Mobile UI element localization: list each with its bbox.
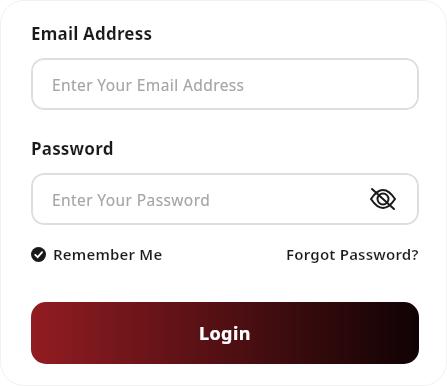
staticText: Enter Your Email Address <box>52 74 245 95</box>
button[interactable]: Login <box>31 302 419 364</box>
button[interactable] <box>369 185 397 213</box>
button[interactable]: Forgot Password? <box>286 244 419 264</box>
staticText: Login <box>199 321 251 346</box>
staticText: Enter Your Password <box>52 189 211 210</box>
button[interactable]: Enter Your Email Address <box>31 58 419 110</box>
button[interactable]: Enter Your Password <box>31 173 419 225</box>
button[interactable]: Remember Me <box>31 244 163 264</box>
staticText: Password <box>31 137 114 160</box>
staticText: Email Address <box>31 22 153 45</box>
staticText: Remember Me <box>53 244 163 264</box>
